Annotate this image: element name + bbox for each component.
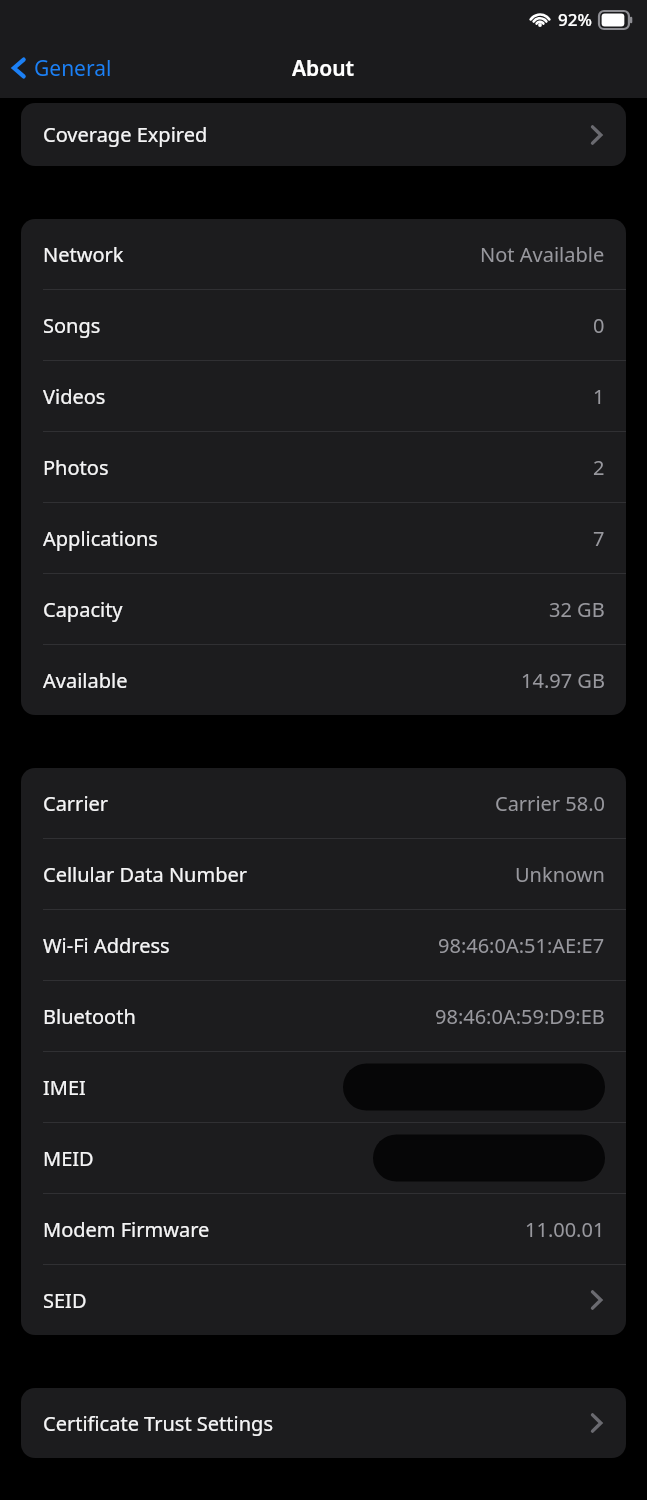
staticText: Videos [43,383,106,410]
button[interactable]: Songs [21,290,626,360]
staticText: 7 [593,525,605,552]
button[interactable]: Cellular Data Number [21,839,626,909]
staticText: Applications [43,525,158,552]
staticText: Modem Firmware [43,1216,210,1243]
staticText: Wi-Fi Address [43,932,170,959]
staticText: Unknown [515,861,605,888]
button[interactable]: SEID [21,1265,626,1335]
staticText: SEID [43,1287,87,1314]
staticText: Available [43,667,128,694]
staticText: Network [43,241,124,268]
staticText: Not Available [480,241,605,268]
staticText: Certificate Trust Settings [43,1410,273,1437]
staticText: General [34,54,112,83]
staticText: MEID [43,1145,94,1172]
button[interactable]: Bluetooth [21,981,626,1051]
staticText: 11.00.01 [525,1216,605,1243]
button[interactable]: Photos [21,432,626,502]
staticText: Carrier 58.0 [495,790,605,817]
staticText: Songs [43,312,101,339]
staticText: 98:46:0A:59:D9:EB [435,1003,605,1030]
button[interactable]: Coverage Expired [21,103,626,166]
staticText: 14.97 GB [521,667,605,694]
button[interactable]: Modem Firmware [21,1194,626,1264]
staticText: Coverage Expired [43,121,208,148]
button[interactable]: IMEI [21,1052,626,1122]
button[interactable]: Carrier [21,768,626,838]
button[interactable]: General [0,47,122,89]
button[interactable]: MEID [21,1123,626,1193]
staticText: Bluetooth [43,1003,136,1030]
button[interactable]: Network [21,219,626,289]
button[interactable]: Videos [21,361,626,431]
button[interactable]: Wi-Fi Address [21,910,626,980]
staticText: Cellular Data Number [43,861,247,888]
button[interactable]: Available [21,645,626,715]
button[interactable]: Certificate Trust Settings [21,1388,626,1458]
staticText: IMEI [43,1074,86,1101]
button[interactable]: Applications [21,503,626,573]
staticText: 98:46:0A:51:AE:E7 [438,932,605,959]
staticText: 0 [593,312,605,339]
staticText: Carrier [43,790,109,817]
staticText: 2 [593,454,605,481]
staticText: 1 [593,383,605,410]
staticText: Photos [43,454,109,481]
staticText: Capacity [43,596,123,623]
staticText: About [292,54,355,83]
staticText: 32 GB [549,596,605,623]
button[interactable]: Capacity [21,574,626,644]
staticText: 92% [558,8,592,31]
